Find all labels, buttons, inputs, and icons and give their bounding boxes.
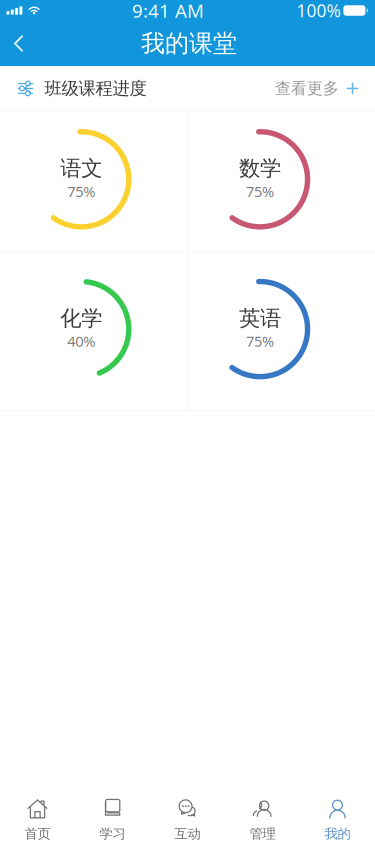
staticText: 我的 bbox=[324, 825, 350, 842]
staticText: 40% bbox=[67, 331, 95, 351]
button[interactable]: 化学 bbox=[0, 252, 187, 410]
staticText: 75% bbox=[246, 181, 274, 201]
staticText: 100% bbox=[296, 0, 340, 22]
staticText: 英语 bbox=[239, 305, 281, 331]
button[interactable]: 学习 bbox=[75, 799, 150, 842]
staticText: 班级课程进度 bbox=[44, 78, 146, 99]
staticText: 75% bbox=[67, 181, 95, 201]
button[interactable]: 英语 bbox=[188, 252, 375, 410]
button[interactable]: 数学 bbox=[188, 112, 375, 251]
button[interactable]: 语文 bbox=[0, 112, 187, 251]
staticText: 语文 bbox=[60, 155, 102, 182]
staticText: 我的课堂 bbox=[141, 29, 237, 58]
button[interactable]: 管理 bbox=[225, 799, 300, 842]
button[interactable]: 我的 bbox=[300, 799, 375, 842]
staticText: 查看更多 bbox=[275, 79, 339, 98]
button[interactable]: Back bbox=[0, 21, 33, 66]
staticText: 数学 bbox=[239, 155, 281, 182]
staticText: 互动 bbox=[174, 825, 200, 842]
button[interactable]: 班级课程进度 bbox=[0, 66, 375, 111]
staticText: 9:41 AM bbox=[132, 0, 204, 23]
staticText: 首页 bbox=[24, 825, 50, 842]
staticText: 化学 bbox=[60, 305, 102, 331]
button[interactable]: 首页 bbox=[0, 799, 75, 842]
button[interactable]: 互动 bbox=[150, 799, 225, 842]
staticText: 75% bbox=[246, 331, 274, 351]
staticText: 学习 bbox=[99, 825, 125, 842]
staticText: 管理 bbox=[249, 825, 275, 842]
